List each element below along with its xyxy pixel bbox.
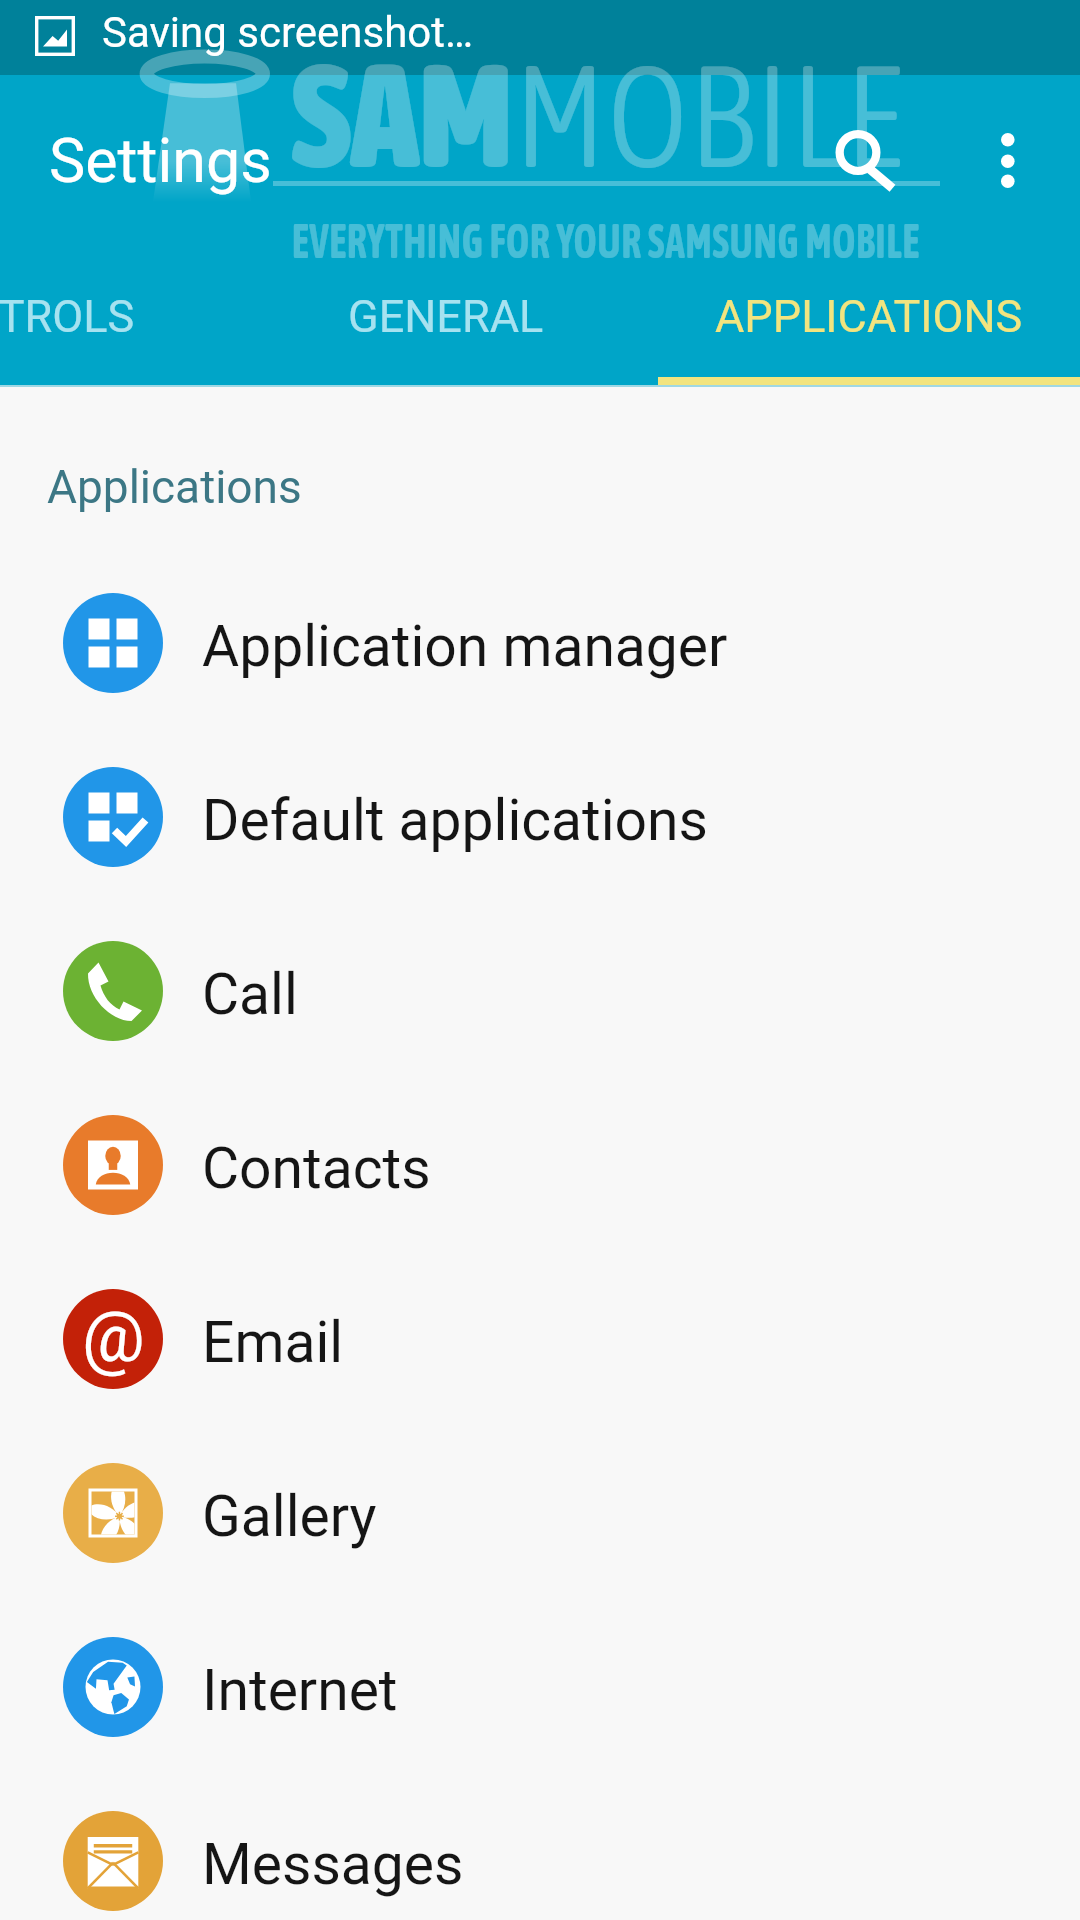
staticText: GENERAL	[348, 290, 544, 343]
staticText: Settings	[49, 125, 272, 196]
button[interactable]: CONTROLS	[0, 261, 135, 371]
staticText: MOBILE	[513, 33, 904, 198]
button[interactable]: Gallery	[0, 1426, 1080, 1600]
staticText: Contacts	[202, 1135, 431, 1202]
staticText: Default applications	[202, 787, 709, 854]
staticText: EVERYTHING FOR YOUR SAMSUNG MOBILE	[292, 213, 921, 268]
staticText: Call	[202, 961, 298, 1028]
staticText: Applications	[47, 460, 302, 514]
staticText: Gallery	[202, 1483, 377, 1550]
button[interactable]: Default applications	[0, 730, 1080, 904]
button[interactable]: Search	[798, 92, 918, 212]
staticText: CONTROLS	[0, 290, 135, 343]
button[interactable]: APPLICATIONS	[658, 261, 1080, 371]
button[interactable]: Call	[0, 904, 1080, 1078]
button[interactable]: More options	[948, 92, 1068, 212]
button[interactable]: Application manager	[0, 556, 1080, 730]
button[interactable]: GENERAL	[311, 261, 581, 371]
staticText: Messages	[202, 1831, 464, 1898]
button[interactable]: Contacts	[0, 1078, 1080, 1252]
button[interactable]: Internet	[0, 1600, 1080, 1774]
button[interactable]: @	[0, 1252, 1080, 1426]
staticText: Application manager	[202, 613, 728, 680]
staticText: Saving screenshot…	[102, 8, 474, 57]
button[interactable]: Messages	[0, 1774, 1080, 1920]
staticText: APPLICATIONS	[715, 290, 1023, 343]
staticText: Email	[202, 1309, 344, 1376]
staticText: SAM	[292, 33, 513, 198]
staticText: @	[82, 1296, 145, 1378]
staticText: Internet	[202, 1657, 398, 1724]
